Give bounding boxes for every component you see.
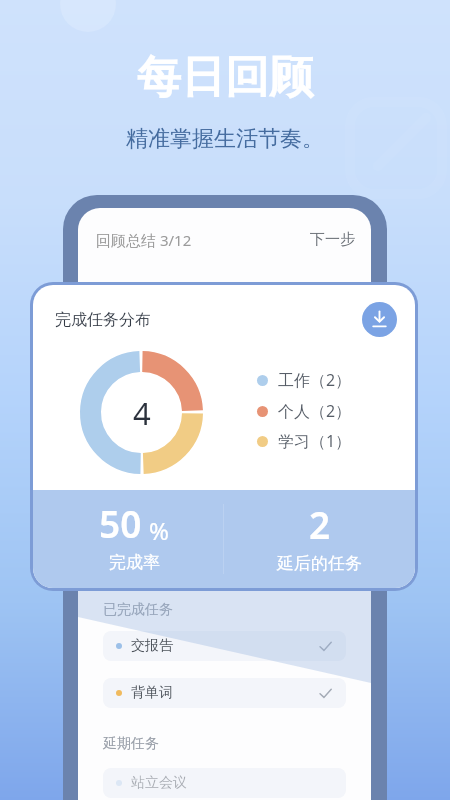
staticText: 精准掌握生活节奏。: [126, 125, 324, 153]
staticText: 站立会议: [131, 774, 187, 792]
button[interactable]: Download: [362, 302, 397, 337]
staticText: 4: [133, 392, 151, 434]
staticText: 2: [309, 499, 331, 549]
staticText: %: [149, 514, 169, 547]
staticText: 学习（1）: [278, 430, 352, 452]
staticText: 完成任务分布: [55, 310, 151, 330]
staticText: 完成率: [109, 552, 160, 573]
button[interactable]: 个人（2）: [257, 399, 352, 423]
button[interactable]: 50: [39, 498, 229, 573]
button[interactable]: 下一步: [310, 230, 355, 249]
staticText: 交报告: [131, 637, 173, 655]
button[interactable]: 2: [224, 499, 415, 574]
staticText: 回顾总结 3/12: [96, 230, 192, 250]
button[interactable]: 背单词: [103, 678, 346, 708]
staticText: 工作（2）: [278, 369, 352, 391]
button[interactable]: 交报告: [103, 631, 346, 661]
staticText: 背单词: [131, 684, 173, 702]
button[interactable]: 工作（2）: [257, 368, 352, 392]
staticText: 已完成任务: [103, 601, 173, 619]
button[interactable]: 站立会议: [103, 768, 346, 798]
staticText: 延期任务: [103, 735, 159, 753]
staticText: 50: [99, 498, 142, 548]
staticText: 延后的任务: [277, 553, 362, 574]
staticText: 每日回顾: [137, 50, 313, 105]
staticText: 个人（2）: [278, 400, 352, 422]
button[interactable]: 学习（1）: [257, 429, 352, 453]
staticText: 下一步: [310, 230, 355, 249]
